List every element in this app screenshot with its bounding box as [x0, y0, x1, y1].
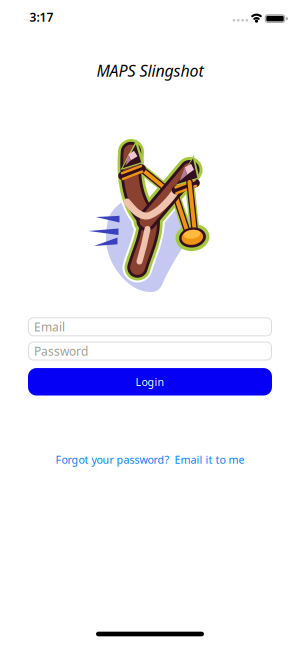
staticText: 3:17: [29, 9, 53, 25]
button[interactable]: Login: [28, 368, 272, 396]
staticText: Login: [135, 375, 164, 389]
button[interactable]: Email it to me: [174, 452, 244, 467]
staticText: Email it to me: [174, 452, 244, 467]
button[interactable]: Home: [96, 632, 204, 636]
staticText: Email: [34, 319, 65, 335]
staticText: Password: [34, 343, 88, 359]
textField[interactable]: Email: [34, 319, 272, 335]
staticText: Forgot your password?: [55, 452, 169, 467]
textField[interactable]: Password: [34, 343, 272, 359]
staticText: MAPS Slingshot: [96, 60, 203, 81]
